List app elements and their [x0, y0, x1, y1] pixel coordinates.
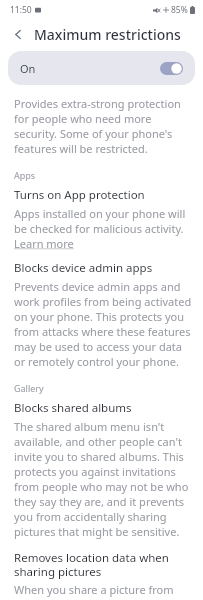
staticText: Blocks shared albums [14, 400, 132, 416]
staticText: On [20, 61, 36, 76]
staticText: The shared album menu isn't available, a… [14, 419, 194, 539]
staticText: Maximum restrictions [34, 25, 181, 44]
button[interactable]: Back [8, 24, 28, 44]
staticText: Gallery [14, 382, 44, 394]
staticText: Apps [14, 169, 36, 181]
staticText: Removes location data when sharing pictu… [14, 550, 193, 579]
button[interactable]: Apps installed on your phone will be che… [14, 206, 197, 251]
staticText: 85% [171, 4, 188, 16]
staticText: 11:50 [10, 4, 32, 16]
staticText: Apps installed on your phone will be che… [14, 206, 197, 251]
staticText: Provides extra-strong protection for peo… [14, 96, 194, 156]
staticText: When you share a picture from Gallery, l… [14, 582, 194, 600]
button[interactable]: On [8, 51, 195, 85]
staticText: Prevents device admin apps and work prof… [14, 279, 194, 369]
staticText: Turns on App protection [14, 187, 145, 203]
staticText: Blocks device admin apps [14, 260, 153, 276]
